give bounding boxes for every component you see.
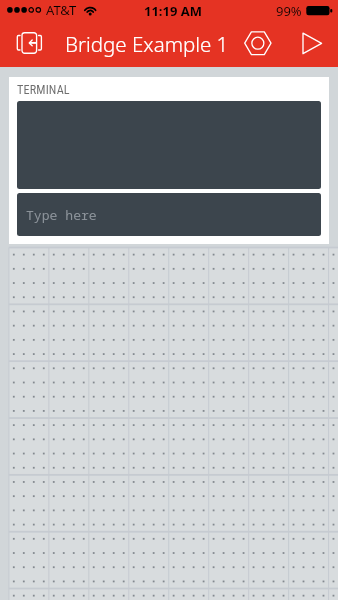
staticText: Type here	[26, 206, 97, 224]
button[interactable]: Run	[298, 28, 328, 59]
staticText: 11:19 AM	[144, 2, 203, 20]
staticText: 99%	[276, 2, 302, 20]
staticText: TERMINAL	[17, 83, 70, 97]
button[interactable]: Settings	[241, 28, 274, 59]
button[interactable]: Disconnect	[12, 27, 46, 59]
staticText: AT&T	[46, 1, 77, 19]
button[interactable]: Type here	[17, 193, 321, 236]
staticText: Bridge Example 1	[65, 30, 229, 58]
